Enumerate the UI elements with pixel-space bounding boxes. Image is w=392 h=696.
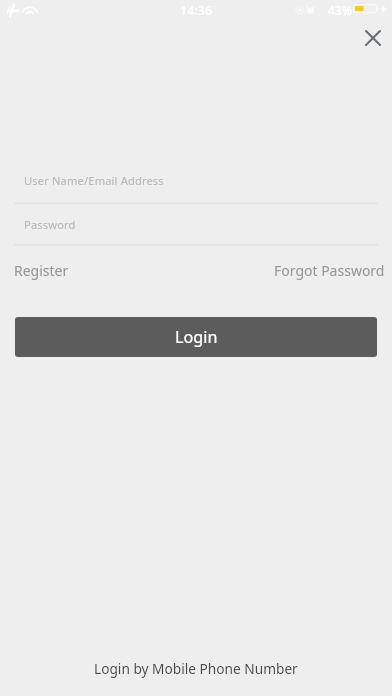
button[interactable]: Login by Mobile Phone Number xyxy=(80,654,312,683)
staticText: Forgot Password xyxy=(274,261,385,280)
button[interactable]: Register xyxy=(14,256,69,285)
staticText: Login xyxy=(175,326,218,348)
button[interactable]: Login xyxy=(15,317,377,357)
button[interactable]: User Name/Email Address xyxy=(0,160,392,200)
staticText: Register xyxy=(14,261,69,280)
staticText: Login by Mobile Phone Number xyxy=(94,659,298,678)
staticText: 43% xyxy=(328,2,352,18)
staticText: Password xyxy=(24,217,76,232)
button[interactable]: Close xyxy=(355,20,391,56)
button[interactable]: Password xyxy=(0,204,392,244)
button[interactable]: Forgot Password xyxy=(274,256,385,285)
staticText: 14:36 xyxy=(180,2,213,19)
staticText: User Name/Email Address xyxy=(24,173,164,188)
